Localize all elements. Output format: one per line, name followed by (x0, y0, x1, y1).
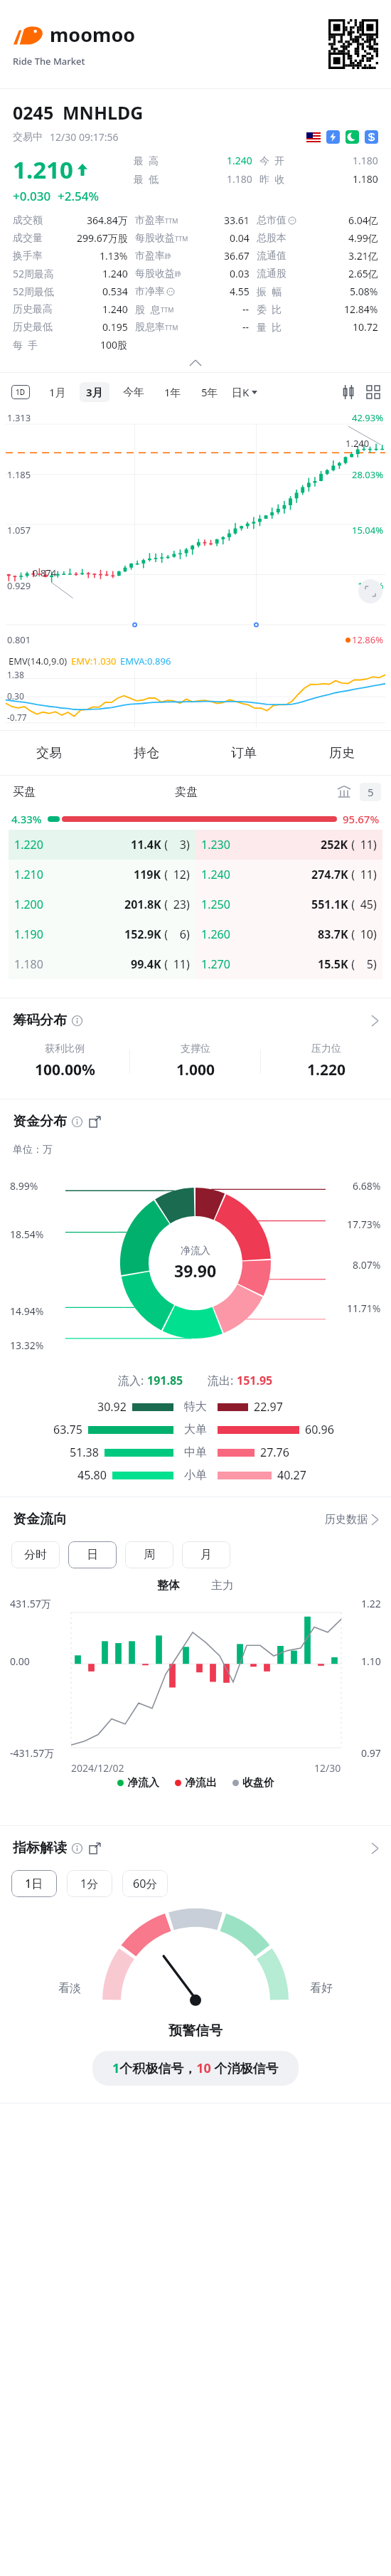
button[interactable]: 1个积极信号，10 个消极信号 (92, 2051, 299, 2086)
staticText: 100股 (100, 338, 128, 352)
staticText: 小单 (184, 1468, 207, 1482)
staticText: ( (348, 956, 355, 972)
staticText: 股息率 (135, 321, 165, 334)
staticText: 1.240 (346, 437, 370, 450)
staticText: 1D (16, 387, 26, 397)
staticText: 委 比 (257, 302, 282, 316)
staticText: 0.04 (230, 231, 250, 245)
staticText: 431.57万 (10, 1597, 51, 1610)
button[interactable]: 5 (360, 783, 381, 801)
button[interactable]: 今年 (117, 383, 151, 402)
staticText: TTM (161, 305, 174, 314)
button[interactable]: 1.210 (9, 860, 382, 890)
button[interactable]: 1年 (158, 382, 188, 402)
button[interactable]: 周 (125, 1541, 173, 1568)
staticText: 12.86% (352, 633, 384, 646)
staticText: 4.33% (11, 812, 42, 826)
button[interactable]: 交易 (0, 731, 97, 775)
staticText: 152.9K (124, 927, 161, 942)
button[interactable]: 月 (182, 1541, 230, 1568)
button[interactable]: 1分 (67, 1870, 112, 1897)
staticText: 11 (168, 956, 186, 972)
staticText: EMV:1.030 (71, 655, 117, 667)
button[interactable]: 1.220 (9, 830, 382, 860)
staticText: EMV(14.0,9.0) (9, 655, 68, 667)
button[interactable]: Currency (365, 130, 378, 144)
button[interactable]: 1.180 (9, 949, 382, 979)
staticText: 1.250 (201, 897, 230, 912)
staticText: 流出: (208, 1373, 237, 1388)
staticText: 1.180 (14, 956, 43, 972)
button[interactable]: Share (90, 1117, 100, 1127)
staticText: 4.99亿 (348, 231, 378, 245)
staticText: ( (161, 956, 168, 972)
staticText: 支撑位 (181, 1042, 210, 1055)
staticText: 15.04% (352, 524, 384, 537)
button[interactable]: 1D (11, 385, 30, 399)
button[interactable]: Candle type (341, 385, 355, 399)
staticText: 551.1K (311, 897, 348, 912)
staticText: 5年 (201, 385, 218, 399)
button[interactable]: 3月 (80, 382, 109, 402)
staticText: 6.68% (353, 1179, 381, 1193)
button[interactable]: 分时 (11, 1541, 60, 1568)
staticText: 100.00% (35, 1060, 95, 1080)
button[interactable]: 60分 (122, 1870, 168, 1897)
staticText: 交易 (36, 745, 62, 761)
button[interactable]: 主力 (195, 1578, 250, 1593)
button[interactable]: 持仓 (97, 731, 195, 775)
staticText: 1.313 (7, 411, 31, 424)
button[interactable]: 历史 (293, 731, 391, 775)
staticText: 63.75 (53, 1422, 82, 1437)
button[interactable]: Broker (337, 785, 351, 799)
staticText: 静 (165, 252, 171, 260)
staticText: ( (348, 927, 355, 942)
button[interactable]: 筹码分布 (13, 998, 378, 1042)
button[interactable]: 指标解读 (13, 1826, 378, 1870)
button[interactable]: 1日 (11, 1870, 57, 1897)
button[interactable]: 日 (68, 1541, 117, 1568)
staticText: 1.220 (307, 1060, 346, 1080)
button[interactable]: 订单 (195, 731, 293, 775)
button[interactable]: Collapse (0, 354, 391, 372)
staticText: 1.260 (201, 927, 230, 942)
staticText: ( (161, 867, 168, 882)
button[interactable]: More tools (367, 386, 380, 398)
button[interactable]: 日K (232, 385, 257, 399)
staticText: +0.030 (13, 188, 51, 204)
staticText: ) (186, 867, 190, 882)
staticText: 卖盘 (175, 785, 198, 799)
button[interactable]: Level 2 (326, 130, 340, 144)
button[interactable]: Fullscreen (358, 579, 382, 603)
staticText: 99.4K (131, 956, 161, 972)
button[interactable]: 5年 (195, 382, 225, 402)
button[interactable]: 资金分布 (13, 1099, 378, 1144)
staticText: 0.00 (10, 1654, 30, 1668)
staticText: 换手率 (13, 250, 43, 263)
staticText: 0.97 (361, 1746, 381, 1760)
staticText: 交易中 (13, 131, 43, 144)
staticText: 1.09% (358, 579, 384, 592)
staticText: 1.185 (7, 468, 31, 481)
staticText: 1.210 (13, 154, 73, 186)
staticText: EMVA:0.896 (120, 655, 171, 667)
staticText: 净流出 (185, 1776, 217, 1790)
button[interactable]: 1月 (43, 382, 73, 402)
staticText: 60分 (133, 1876, 158, 1891)
staticText: 60.96 (305, 1422, 334, 1437)
staticText: 每 手 (13, 338, 38, 352)
button[interactable]: 1.200 (9, 890, 382, 919)
button[interactable]: 资金流向 (13, 1497, 378, 1541)
staticText: 市盈率 (135, 214, 165, 227)
staticText: 买盘 (13, 785, 36, 799)
staticText: 18.54% (10, 1228, 44, 1241)
staticText: 流通值 (257, 250, 286, 263)
button[interactable]: Dark pool (346, 130, 359, 144)
staticText: 今 开 (259, 154, 285, 167)
button[interactable]: Share (90, 1843, 100, 1854)
staticText: 22.97 (254, 1399, 283, 1415)
button[interactable]: 整体 (141, 1578, 195, 1593)
button[interactable]: 1.190 (9, 919, 382, 949)
staticText: 日 (87, 1548, 98, 1562)
staticText: 1.180 (353, 172, 378, 186)
